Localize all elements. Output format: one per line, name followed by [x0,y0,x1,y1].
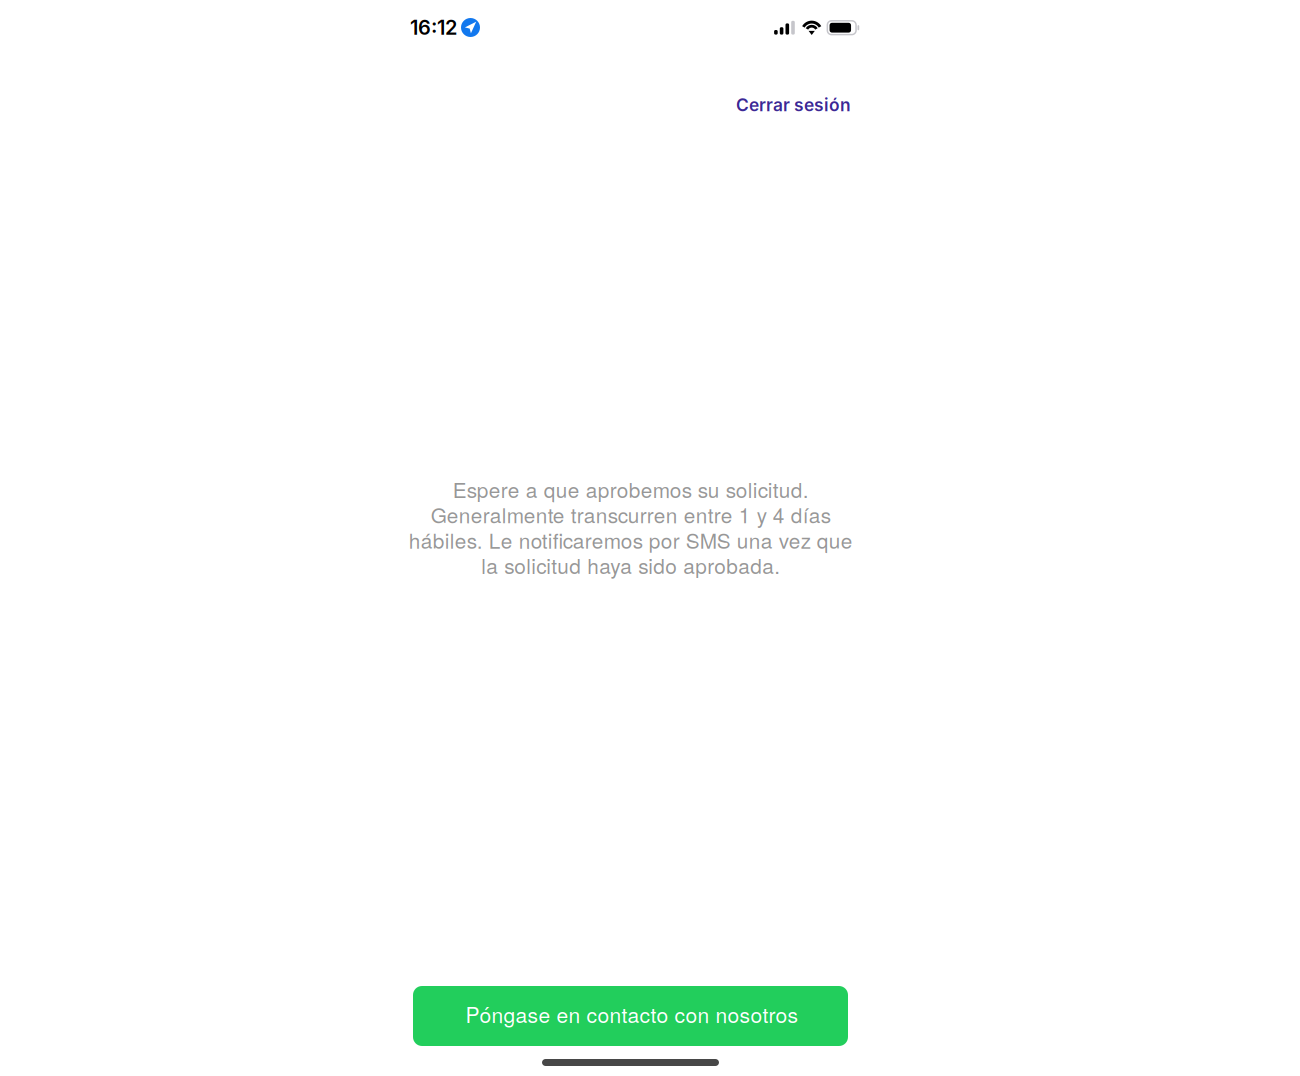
staticText: Espere a que aprobemos su solicitud. [452,474,808,504]
button[interactable]: Póngase en contacto con nosotros [413,986,848,1046]
staticText: 16:12 [410,15,457,40]
staticText: hábiles. Le notificaremos por SMS una ve… [408,525,852,555]
staticText: Póngase en contacto con nosotros [465,999,798,1029]
staticText: Cerrar sesión [736,94,851,115]
staticText: Generalmente transcurren entre 1 y 4 día… [430,499,830,529]
staticText: la solicitud haya sido aprobada. [481,550,780,580]
button[interactable]: Cerrar sesión [726,85,861,124]
